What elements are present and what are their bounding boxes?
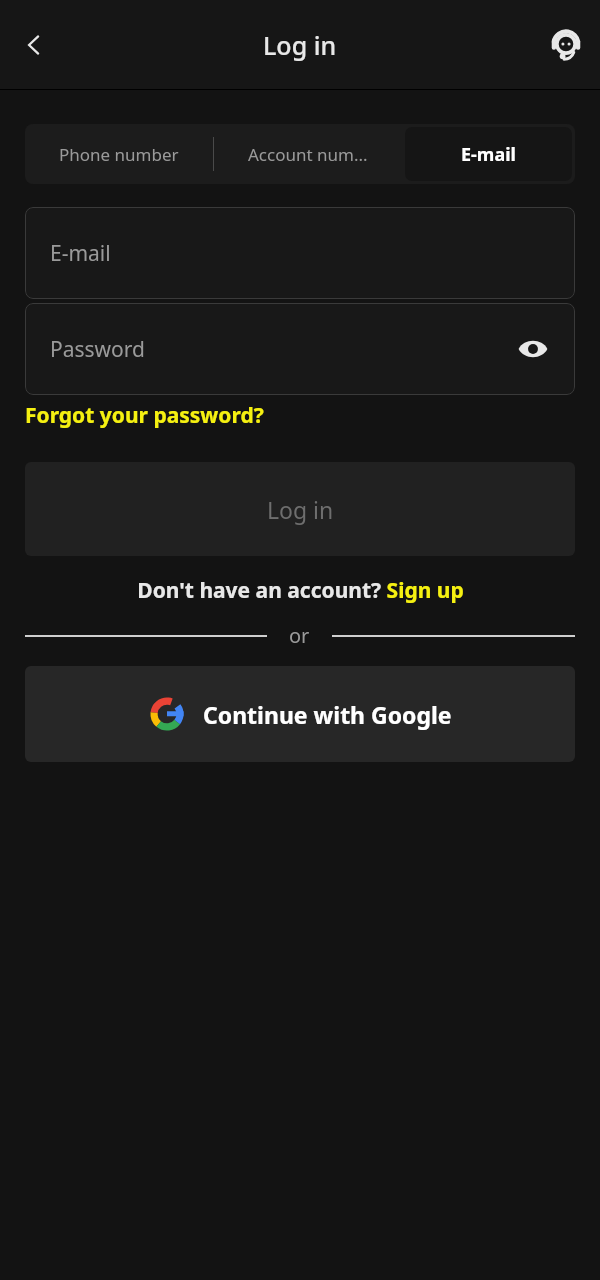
staticText: Password (50, 335, 145, 364)
staticText: Phone number (59, 143, 179, 166)
staticText: Account num... (248, 143, 368, 166)
button[interactable]: E-mail (405, 127, 572, 181)
staticText: Log in (267, 494, 334, 525)
button[interactable]: Customer support (540, 19, 592, 71)
button[interactable]: Don't have an account? Sign up (0, 576, 600, 605)
button[interactable]: Log in (25, 462, 575, 556)
button[interactable]: Account num... (214, 124, 402, 184)
staticText: Continue with Google (203, 699, 452, 730)
button[interactable]: Password (25, 303, 575, 395)
staticText: E-mail (461, 142, 516, 167)
button[interactable]: Show password (511, 327, 555, 371)
button[interactable]: Continue with Google (25, 666, 575, 762)
staticText: Forgot your password? (25, 401, 264, 430)
staticText: Log in (263, 28, 337, 62)
button[interactable]: Phone number (25, 124, 213, 184)
staticText: E-mail (50, 239, 111, 268)
button[interactable]: E-mail (25, 207, 575, 299)
button[interactable]: Back (8, 19, 60, 71)
button[interactable]: Forgot your password? (25, 401, 264, 430)
staticText: Don't have an account? Sign up (137, 576, 464, 605)
staticText: or (289, 622, 310, 649)
